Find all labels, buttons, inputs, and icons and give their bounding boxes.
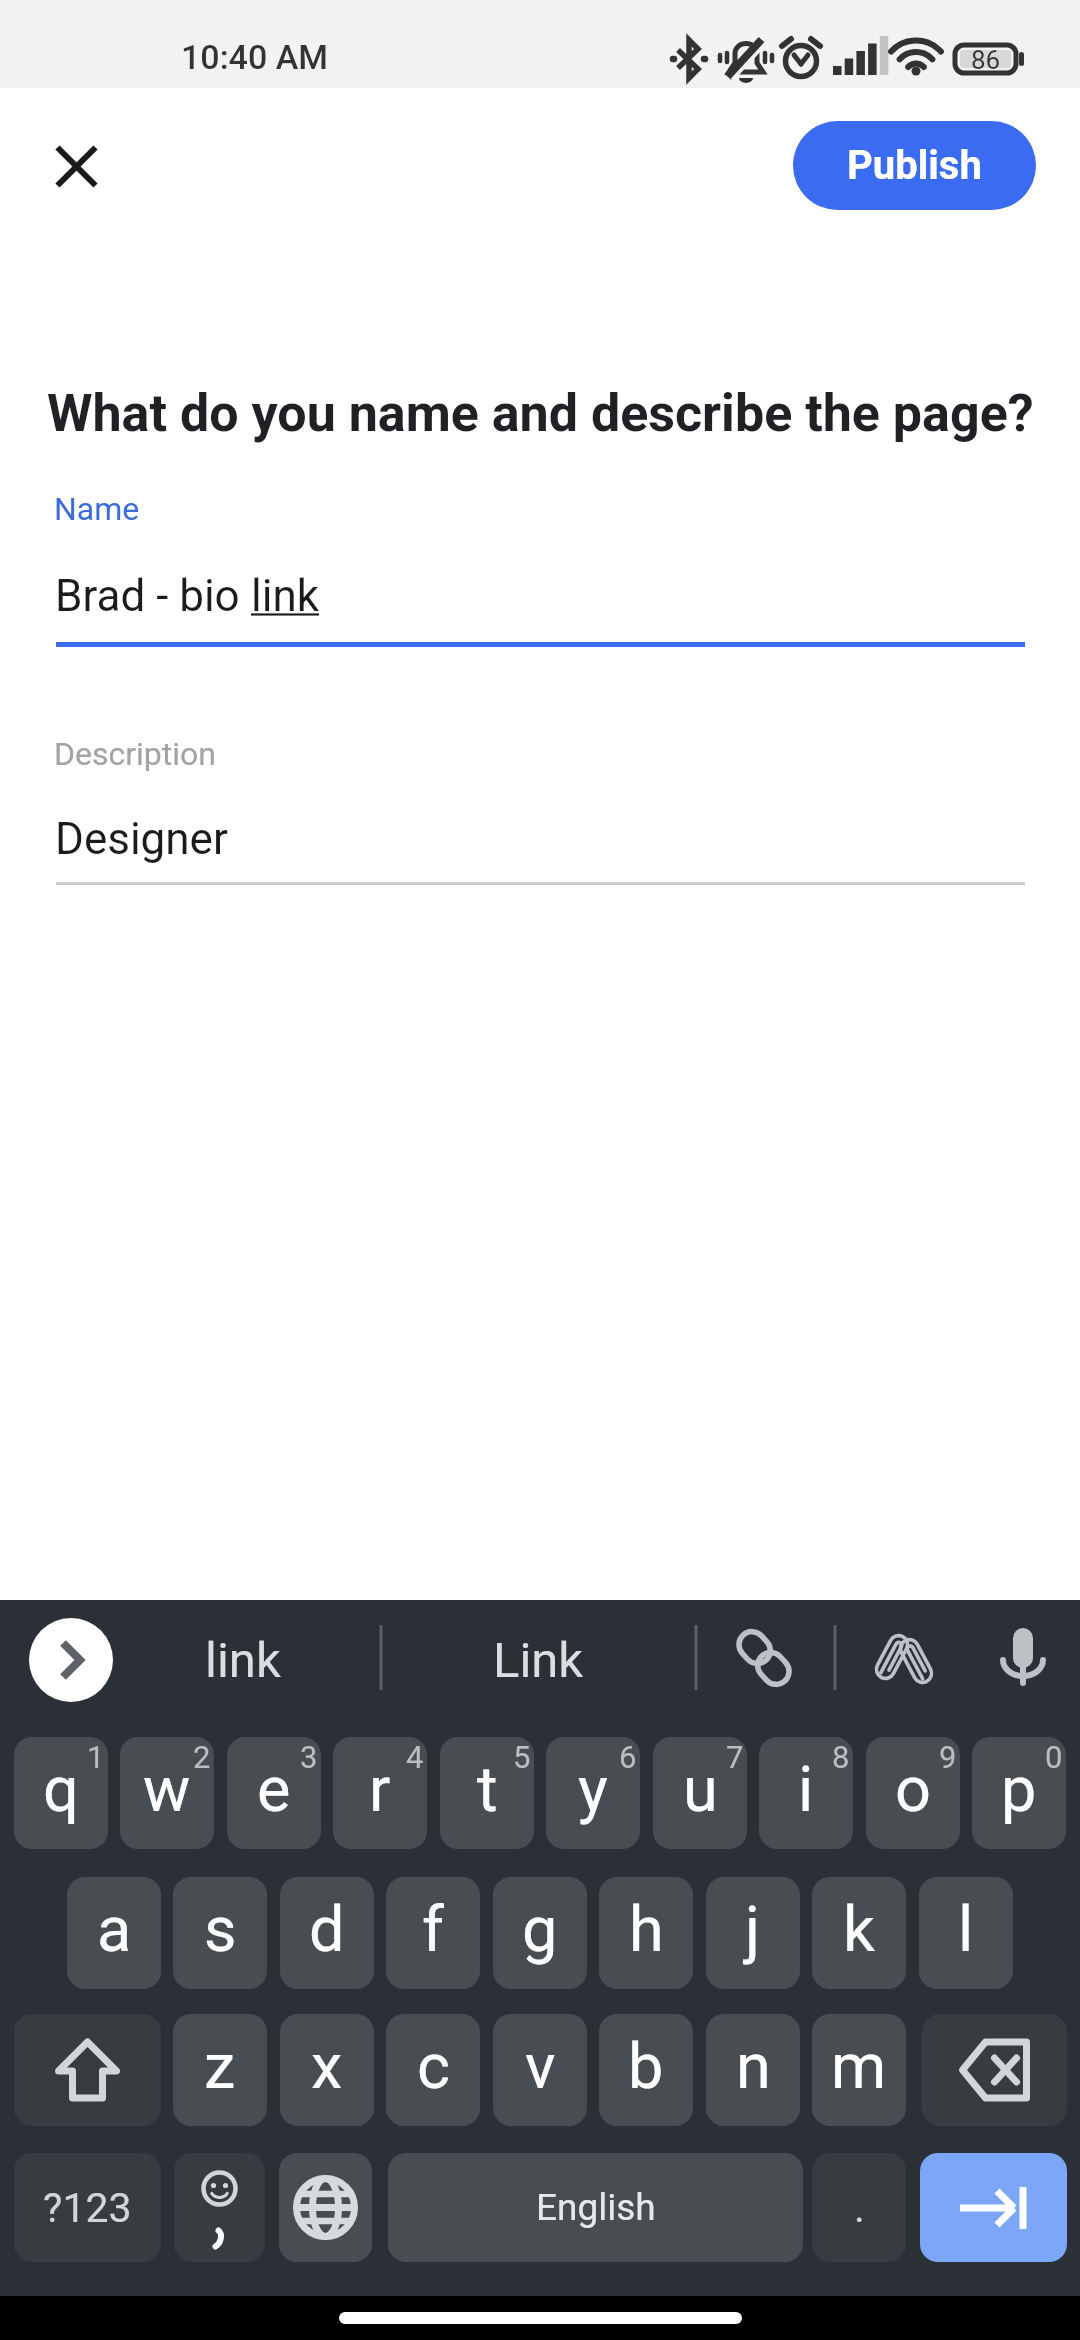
- staticText: 4: [406, 1739, 424, 1775]
- button[interactable]: j: [706, 1877, 800, 1989]
- staticText: f: [422, 1893, 444, 1967]
- staticText: k: [843, 1893, 875, 1967]
- button[interactable]: n: [706, 2014, 800, 2126]
- button[interactable]: g: [493, 1877, 587, 1989]
- button[interactable]: Brad - bio: [55, 570, 319, 622]
- staticText: link: [205, 1632, 281, 1689]
- staticText: n: [736, 2030, 771, 2104]
- button[interactable]: i: [759, 1737, 853, 1849]
- button[interactable]: l: [919, 1877, 1013, 1989]
- staticText: 8: [832, 1739, 850, 1775]
- button[interactable]: s: [173, 1877, 267, 1989]
- staticText: j: [745, 1893, 761, 1967]
- staticText: ?123: [43, 2184, 132, 2232]
- button[interactable]: m: [812, 2014, 906, 2126]
- staticText: w: [143, 1753, 191, 1827]
- staticText: 7: [726, 1739, 744, 1775]
- button[interactable]: z: [173, 2014, 267, 2126]
- staticText: link: [251, 570, 319, 622]
- staticText: p: [1001, 1753, 1037, 1827]
- button[interactable]: y: [546, 1737, 640, 1849]
- button[interactable]: k: [812, 1877, 906, 1989]
- staticText: z: [204, 2030, 236, 2104]
- staticText: 5: [513, 1739, 531, 1775]
- staticText: u: [683, 1753, 718, 1827]
- button[interactable]: Change language: [279, 2153, 372, 2262]
- staticText: .: [854, 2184, 865, 2232]
- button[interactable]: e: [227, 1737, 321, 1849]
- staticText: i: [798, 1753, 814, 1827]
- button[interactable]: Shift: [14, 2014, 161, 2126]
- staticText: 9: [939, 1739, 957, 1775]
- staticText: o: [895, 1753, 931, 1827]
- staticText: g: [522, 1893, 558, 1967]
- button[interactable]: Close: [29, 119, 124, 214]
- button[interactable]: f: [386, 1877, 480, 1989]
- button[interactable]: x: [280, 2014, 374, 2126]
- staticText: 1: [87, 1739, 105, 1775]
- staticText: Name: [54, 490, 140, 528]
- button[interactable]: link: [123, 1600, 363, 1720]
- staticText: Description: [54, 735, 216, 773]
- button[interactable]: Backspace: [922, 2014, 1067, 2126]
- staticText: Brad - bio: [55, 570, 251, 622]
- staticText: 0: [1045, 1739, 1063, 1775]
- button[interactable]: ?123: [14, 2153, 161, 2262]
- button[interactable]: Designer: [55, 813, 228, 865]
- button[interactable]: h: [599, 1877, 693, 1989]
- staticText: Link: [493, 1632, 584, 1689]
- button[interactable]: r: [333, 1737, 427, 1849]
- staticText: x: [311, 2030, 343, 2104]
- staticText: s: [204, 1893, 237, 1967]
- button[interactable]: Publish: [793, 121, 1036, 210]
- staticText: 3: [300, 1739, 318, 1775]
- button[interactable]: Clipboard: [855, 1608, 955, 1708]
- staticText: English: [536, 2186, 656, 2229]
- button[interactable]: Link: [383, 1600, 694, 1720]
- button[interactable]: o: [866, 1737, 960, 1849]
- staticText: e: [257, 1753, 291, 1827]
- button[interactable]: Emoji: [174, 2153, 265, 2262]
- staticText: v: [525, 2030, 556, 2104]
- button[interactable]: English: [388, 2153, 803, 2262]
- staticText: Publish: [847, 142, 982, 189]
- staticText: What do you name and describe the page?: [47, 383, 1080, 444]
- button[interactable]: Enter: [920, 2153, 1067, 2262]
- staticText: m: [831, 2030, 887, 2104]
- staticText: t: [477, 1753, 498, 1827]
- button[interactable]: a: [67, 1877, 161, 1989]
- staticText: y: [578, 1753, 608, 1827]
- staticText: h: [629, 1893, 664, 1967]
- staticText: c: [417, 2030, 450, 2104]
- button[interactable]: p: [972, 1737, 1066, 1849]
- button[interactable]: Voice input: [973, 1608, 1073, 1708]
- staticText: 10:40 AM: [181, 37, 328, 77]
- button[interactable]: w: [120, 1737, 214, 1849]
- staticText: r: [369, 1753, 391, 1827]
- staticText: q: [43, 1753, 79, 1827]
- staticText: d: [309, 1893, 345, 1967]
- button[interactable]: v: [493, 2014, 587, 2126]
- button[interactable]: t: [440, 1737, 534, 1849]
- button[interactable]: .: [812, 2153, 906, 2262]
- staticText: b: [628, 2030, 664, 2104]
- button[interactable]: Insert link: [714, 1608, 814, 1708]
- button[interactable]: More suggestions: [29, 1618, 113, 1702]
- button[interactable]: d: [280, 1877, 374, 1989]
- button[interactable]: b: [599, 2014, 693, 2126]
- button[interactable]: q: [14, 1737, 108, 1849]
- staticText: 86: [971, 45, 1001, 73]
- staticText: a: [97, 1893, 132, 1967]
- button[interactable]: c: [386, 2014, 480, 2126]
- button[interactable]: u: [653, 1737, 747, 1849]
- staticText: 2: [193, 1739, 211, 1775]
- staticText: l: [958, 1893, 974, 1967]
- staticText: 6: [619, 1739, 637, 1775]
